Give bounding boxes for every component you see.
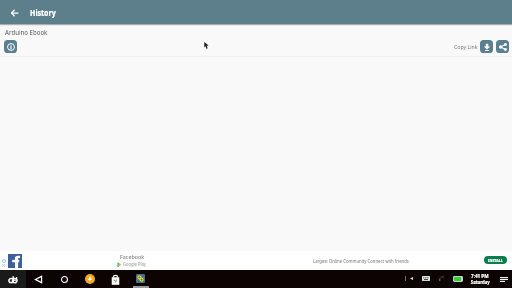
button[interactable]: Copy Link (451, 43, 478, 50)
button[interactable]: Facebook (0, 251, 512, 270)
staticText: Facebook (120, 253, 145, 260)
staticText: INSTALL (488, 257, 503, 263)
button[interactable]: Back (4, 1, 24, 24)
button[interactable]: INSTALL (484, 256, 507, 264)
button[interactable]: Downloads (85, 274, 95, 284)
button[interactable]: Home (53, 270, 75, 288)
button[interactable]: Menu (496, 270, 512, 288)
staticText: Google Play (123, 261, 146, 268)
button[interactable]: Back (27, 270, 49, 288)
button[interactable]: App logo (5, 270, 21, 288)
button[interactable]: Download (480, 40, 493, 53)
staticText: Arduino Ebook (5, 28, 48, 37)
button[interactable]: Share (496, 40, 509, 53)
button[interactable]: Play Store (110, 274, 120, 285)
staticText: Largest Online Community Connect with fr… (313, 258, 409, 265)
staticText: Saturday (471, 279, 490, 285)
staticText: History (30, 7, 56, 19)
staticText: 7:41 PM (471, 273, 489, 279)
button[interactable]: Info (4, 40, 17, 53)
button[interactable]: Current app (136, 274, 145, 283)
button[interactable]: Keyboard (422, 276, 430, 281)
